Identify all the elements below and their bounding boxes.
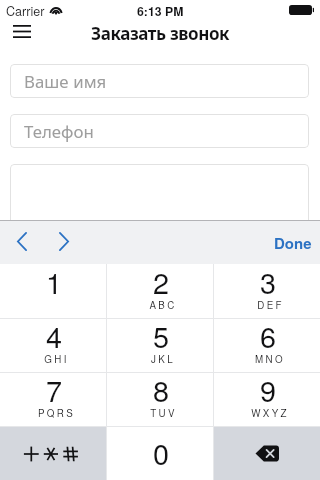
staticText: Ваше имя [24, 69, 107, 93]
button[interactable]: Menu [4, 15, 40, 47]
staticText: Заказать звонок [91, 21, 230, 45]
staticText: 0 [153, 432, 170, 473]
staticText: 5 [153, 315, 170, 356]
button[interactable]: 6 [214, 318, 320, 372]
button[interactable]: 1 [0, 264, 106, 318]
staticText: 1 [46, 261, 63, 302]
staticText: 6 [260, 315, 277, 356]
button[interactable]: 2 [107, 264, 213, 318]
staticText: 8 [153, 369, 170, 410]
staticText: PQRS [38, 406, 75, 420]
staticText: Done [274, 232, 312, 253]
staticText: Телефон [24, 120, 94, 143]
staticText: 9 [260, 369, 277, 410]
staticText: JKL [151, 352, 175, 366]
staticText: WXYZ [251, 406, 289, 420]
button[interactable]: Previous field [1, 219, 43, 263]
staticText: MNO [255, 352, 285, 366]
button[interactable]: 9 [214, 372, 320, 426]
button[interactable]: Symbols [0, 426, 106, 480]
button[interactable]: 3 [214, 264, 320, 318]
staticText: Carrier [6, 2, 45, 20]
button[interactable]: 0 [107, 426, 213, 480]
button[interactable]: Телефон [10, 114, 309, 148]
button[interactable] [10, 164, 309, 234]
staticText: TUV [150, 406, 177, 420]
button[interactable]: Next field [43, 219, 85, 263]
staticText: ABC [149, 298, 177, 312]
button[interactable]: 8 [107, 372, 213, 426]
button[interactable]: 7 [0, 372, 106, 426]
staticText: DEF [257, 298, 284, 312]
button[interactable]: 5 [107, 318, 213, 372]
staticText: 6:13 PM [137, 2, 184, 20]
staticText: 2 [153, 261, 170, 302]
staticText: 3 [260, 261, 277, 302]
button[interactable]: 4 [0, 318, 106, 372]
button[interactable]: Delete [214, 426, 320, 480]
button[interactable]: Ваше имя [10, 64, 309, 98]
staticText: 4 [46, 315, 63, 356]
staticText: 7 [46, 369, 63, 410]
button[interactable]: Done [261, 220, 320, 264]
staticText: GHI [44, 352, 69, 366]
